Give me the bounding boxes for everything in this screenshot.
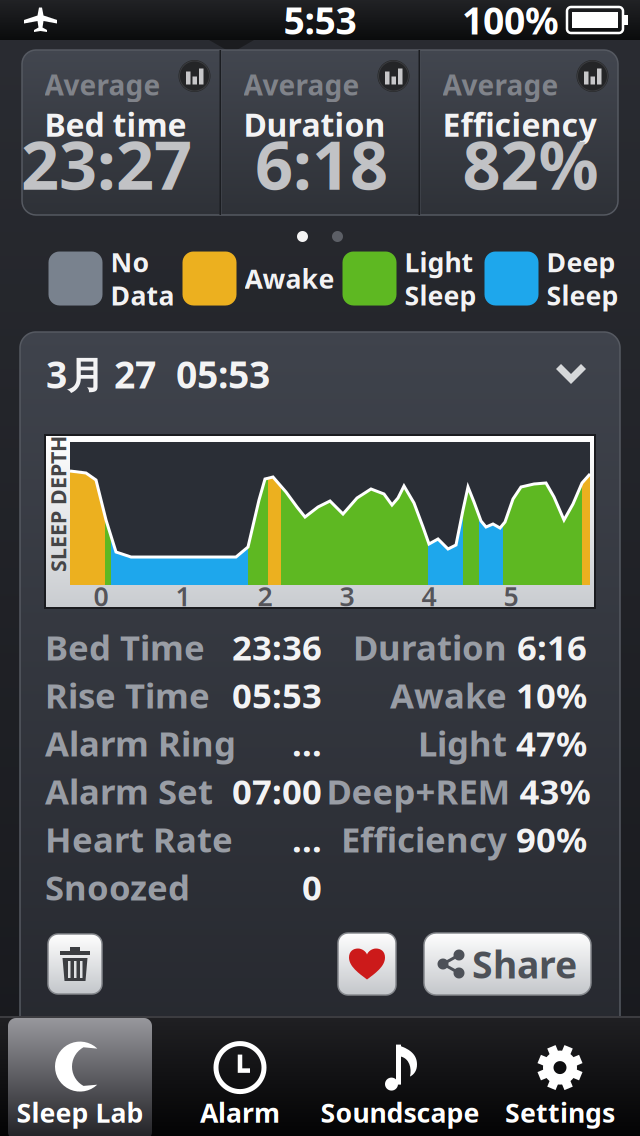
staticText: Sleep Lab [16, 1095, 143, 1130]
staticText: SLEEP DEPTH [0, 490, 126, 518]
staticText: 5 [503, 578, 518, 614]
staticText: Average [44, 66, 160, 103]
staticText: Light [418, 720, 507, 766]
button[interactable]: Average [22, 50, 618, 215]
staticText: 07:00 [232, 768, 322, 814]
staticText: 47% [516, 720, 587, 766]
staticText: Bed Time [45, 624, 205, 670]
staticText: 82% [462, 120, 598, 208]
staticText: Snoozed [45, 864, 190, 910]
staticText: 1 [175, 578, 190, 614]
staticText: Efficiency [341, 816, 507, 862]
button[interactable]: Settings [480, 1016, 640, 1136]
staticText: 23:27 [21, 120, 192, 208]
staticText: 6:16 [517, 624, 587, 670]
staticText: Sleep [546, 277, 618, 313]
staticText: No [110, 244, 149, 279]
staticText: 05:53 [232, 672, 322, 718]
staticText: 6:18 [255, 120, 388, 208]
staticText: Deep [546, 244, 615, 279]
staticText: 43% [519, 768, 590, 814]
staticText: Settings [505, 1095, 615, 1130]
staticText: 5:53 [283, 0, 356, 45]
staticText: 3 [339, 578, 354, 614]
staticText: 0 [93, 578, 108, 614]
button[interactable]: Share [424, 933, 591, 995]
button[interactable]: 3月 27 05:53 [20, 332, 620, 416]
staticText: Alarm [200, 1095, 280, 1130]
staticText: Duration [353, 624, 507, 670]
staticText: Data [110, 277, 174, 313]
staticText: Duration [243, 103, 385, 146]
staticText: 23:36 [232, 624, 322, 670]
staticText: Bed time [44, 103, 186, 146]
staticText: Alarm Set [45, 768, 213, 814]
staticText: 0 [302, 864, 322, 910]
staticText: Light [404, 244, 473, 279]
staticText: ... [292, 720, 322, 766]
staticText: Share [472, 939, 577, 989]
staticText: 90% [516, 816, 587, 862]
staticText: 4 [421, 578, 436, 614]
staticText: Alarm Ring [45, 720, 236, 766]
staticText: Efficiency [442, 103, 596, 146]
staticText: 10% [516, 672, 587, 718]
staticText: 2 [257, 578, 272, 614]
staticText: 3月 27 05:53 [46, 349, 270, 399]
staticText: ... [292, 816, 322, 862]
staticText: Sleep [404, 277, 476, 313]
staticText: 100% [462, 0, 559, 45]
staticText: Heart Rate [45, 816, 233, 862]
staticText: Average [442, 66, 558, 103]
button[interactable]: Favorite [338, 933, 396, 995]
staticText: Awake [390, 672, 507, 718]
staticText: Deep+REM [326, 768, 510, 814]
button[interactable]: Alarm [160, 1016, 320, 1136]
button[interactable]: Sleep Lab [0, 1016, 160, 1136]
staticText: Average [243, 66, 359, 103]
button[interactable]: Delete [48, 934, 102, 994]
staticText: Soundscape [320, 1095, 479, 1130]
staticText: Awake [244, 261, 334, 296]
button[interactable]: Soundscape [320, 1016, 480, 1136]
staticText: Rise Time [45, 672, 210, 718]
